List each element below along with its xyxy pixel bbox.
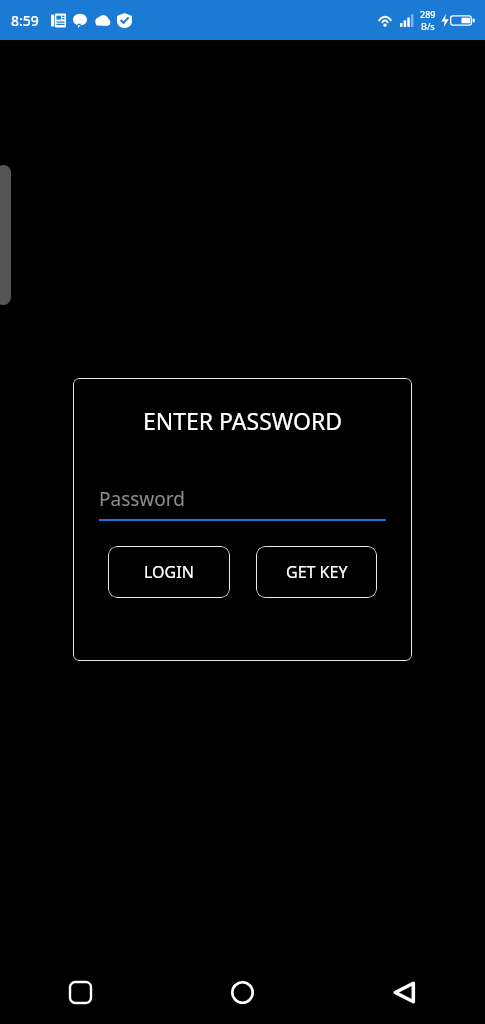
button[interactable]: Home: [161, 960, 323, 1024]
staticText: Password: [99, 486, 185, 512]
staticText: GET KEY: [286, 561, 348, 583]
staticText: B/s: [421, 20, 435, 32]
staticText: LOGIN: [144, 561, 194, 583]
staticText: 8:59: [11, 11, 39, 30]
button[interactable]: GET KEY: [256, 546, 377, 598]
button[interactable]: Open navigation drawer: [0, 165, 11, 305]
button[interactable]: Back: [323, 960, 485, 1024]
staticText: ENTER PASSWORD: [73, 405, 412, 436]
button[interactable]: LOGIN: [108, 546, 230, 598]
staticText: 289: [420, 8, 436, 20]
button[interactable]: Password: [99, 486, 386, 521]
button[interactable]: Recent apps: [0, 960, 161, 1024]
